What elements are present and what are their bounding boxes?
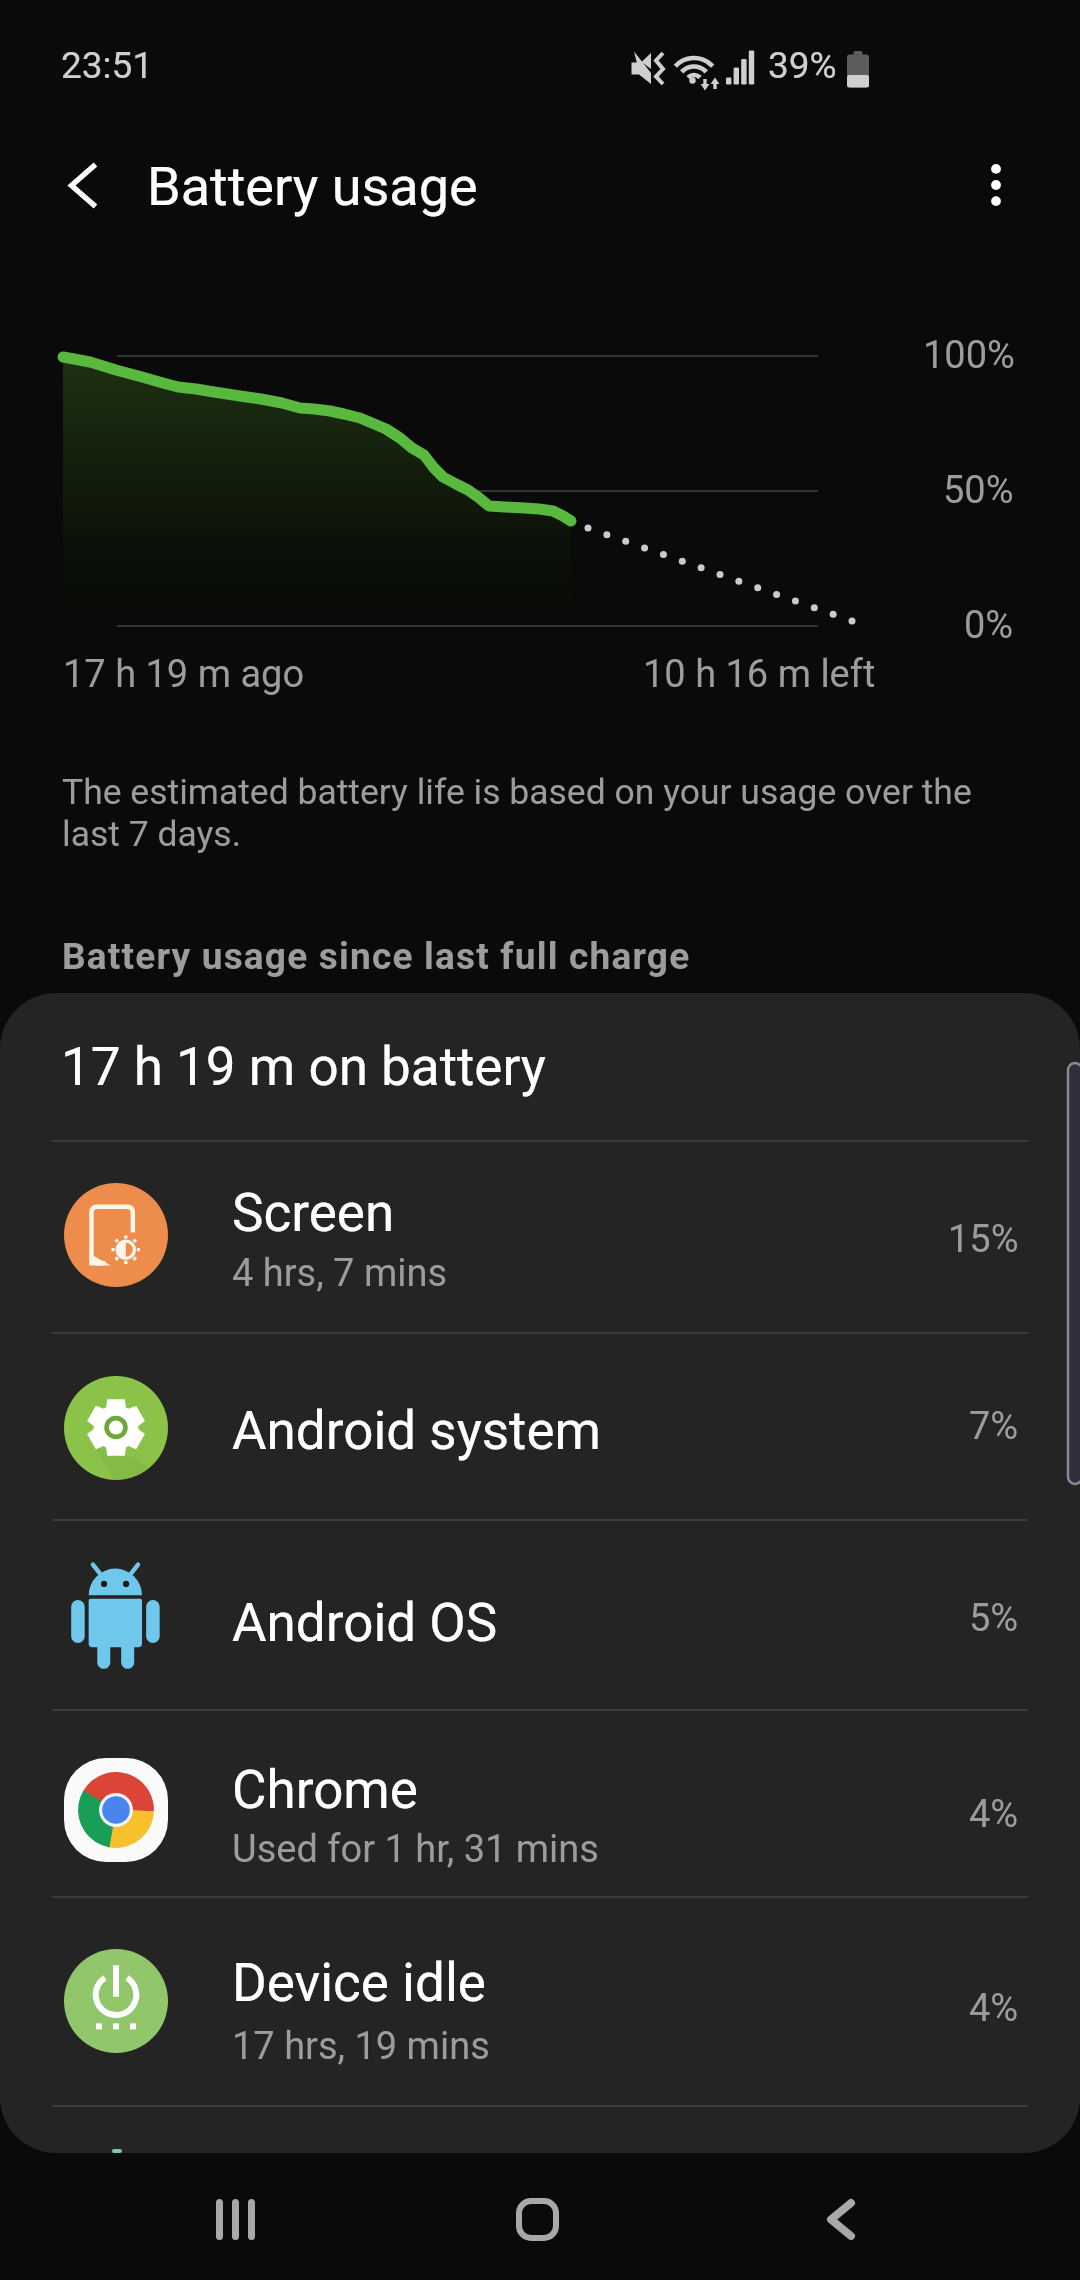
staticText: Used for 1 hr, 31 mins: [232, 1827, 599, 1872]
staticText: 17 h 19 m on battery: [61, 1036, 546, 1098]
button[interactable]: [0, 1896, 1080, 2105]
staticText: Android OS: [232, 1592, 498, 1654]
staticText: 4%: [969, 1792, 1019, 1837]
button[interactable]: Back: [771, 2169, 911, 2269]
button[interactable]: [0, 1709, 1080, 1896]
staticText: Battery usage: [147, 155, 478, 218]
button[interactable]: Recent apps: [165, 2169, 305, 2269]
staticText: 0%: [964, 603, 1014, 648]
staticText: Device idle: [232, 1952, 486, 2014]
staticText: 15%: [948, 1217, 1019, 1262]
staticText: 10 h 16 m left: [643, 652, 876, 697]
button[interactable]: More options: [940, 129, 1052, 241]
button[interactable]: Navigate up: [27, 129, 139, 241]
staticText: Screen: [232, 1182, 395, 1244]
staticText: 50%: [943, 468, 1014, 513]
staticText: 23:51: [61, 44, 154, 87]
button[interactable]: [0, 1140, 1080, 1332]
button[interactable]: Home: [467, 2169, 607, 2269]
staticText: Android system: [232, 1400, 602, 1462]
staticText: 39%: [768, 44, 837, 87]
button[interactable]: [0, 1519, 1080, 1709]
staticText: 5%: [969, 1596, 1019, 1641]
staticText: 100%: [923, 333, 1015, 378]
staticText: 17 h 19 m ago: [63, 652, 305, 697]
staticText: 17 hrs, 19 mins: [232, 2024, 490, 2069]
staticText: 4%: [969, 1986, 1019, 2031]
staticText: Chrome: [232, 1759, 418, 1821]
staticText: Battery usage since last full charge: [62, 935, 691, 978]
staticText: The estimated battery life is based on y…: [62, 771, 972, 855]
staticText: 4 hrs, 7 mins: [232, 1251, 448, 1296]
button[interactable]: [0, 1332, 1080, 1519]
staticText: 7%: [969, 1404, 1019, 1449]
